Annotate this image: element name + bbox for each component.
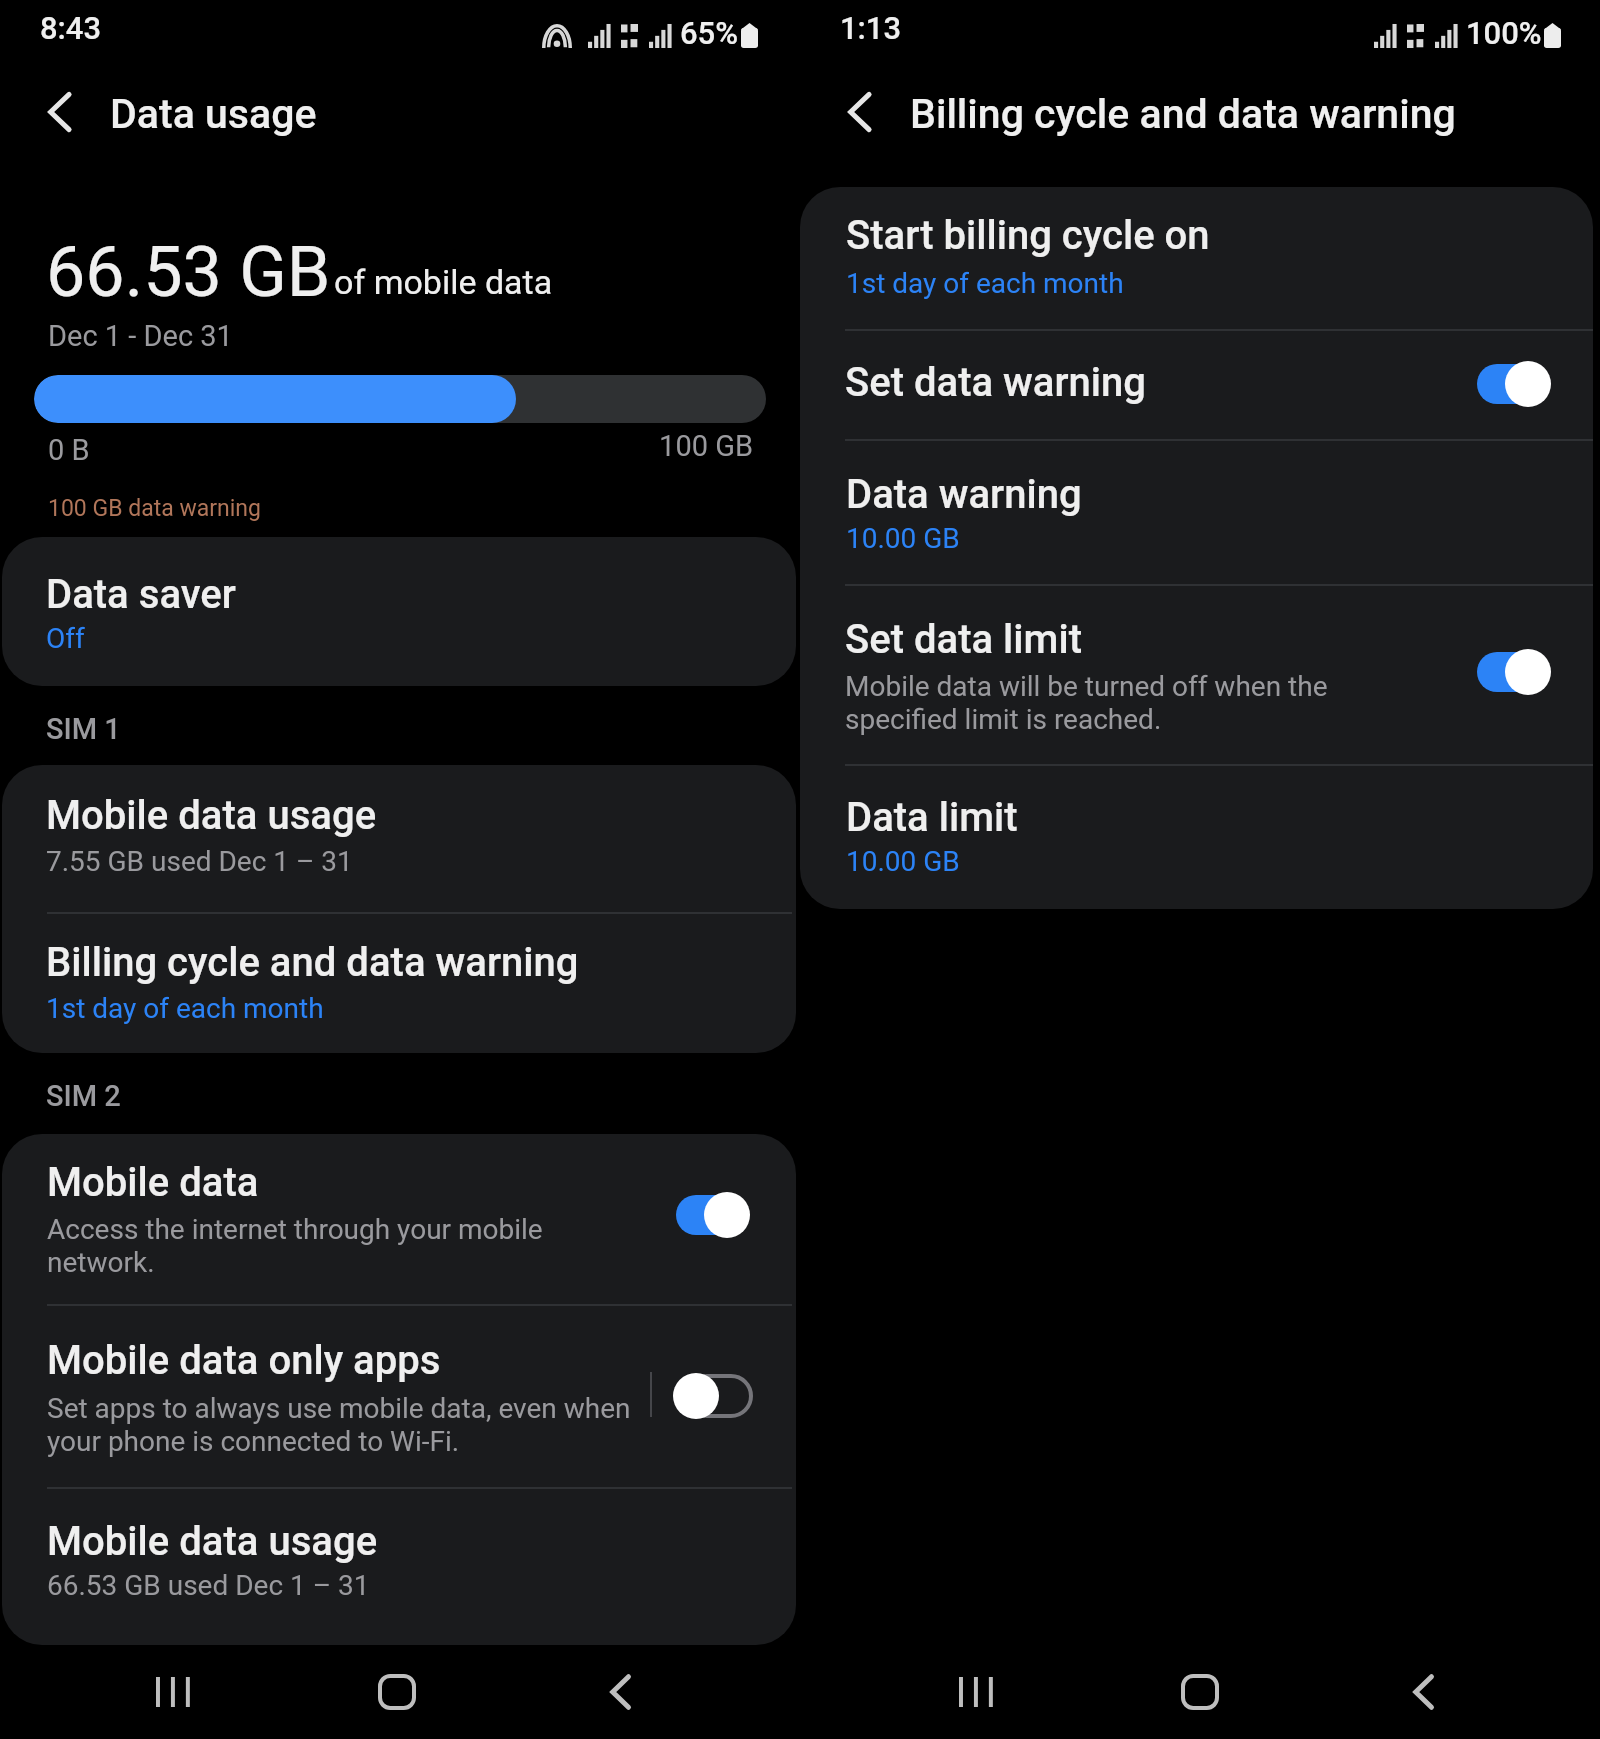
button[interactable]: Back bbox=[28, 80, 92, 144]
staticText: Set apps to always use mobile data, even… bbox=[47, 1392, 631, 1458]
button[interactable]: Home bbox=[357, 1652, 437, 1732]
button[interactable]: Set data warning bbox=[800, 331, 1593, 439]
staticText: 1st day of each month bbox=[846, 267, 1124, 300]
button[interactable]: Data limit, 10.00 GB bbox=[800, 766, 1593, 909]
staticText: Off bbox=[46, 622, 85, 655]
button[interactable]: Back bbox=[580, 1652, 660, 1732]
staticText: 66.53 GB used Dec 1 – 31 bbox=[47, 1569, 370, 1602]
staticText: 65% bbox=[680, 15, 739, 51]
button[interactable]: Back bbox=[1383, 1652, 1463, 1732]
staticText: Mobile data bbox=[47, 1159, 259, 1206]
button[interactable]: Mobile data bbox=[2, 1134, 796, 1304]
staticText: 7.55 GB used Dec 1 – 31 bbox=[46, 845, 353, 878]
staticText: 100% bbox=[1466, 15, 1542, 51]
button[interactable]: Home bbox=[1160, 1652, 1240, 1732]
button[interactable]: Switch on bbox=[676, 1192, 750, 1238]
button[interactable]: Data saver, Off bbox=[2, 537, 796, 686]
staticText: Mobile data only apps bbox=[47, 1337, 441, 1384]
button[interactable]: Billing cycle and data warning, 1st day … bbox=[2, 913, 796, 1053]
staticText: Billing cycle and data warning bbox=[910, 90, 1456, 138]
staticText: 8:43 bbox=[40, 10, 102, 46]
staticText: 66.53 GB bbox=[46, 231, 331, 313]
button[interactable]: Data warning, 10.00 GB bbox=[800, 441, 1593, 584]
staticText: Set data limit bbox=[845, 616, 1082, 663]
staticText: 0 B bbox=[48, 433, 90, 467]
button[interactable]: Recent apps bbox=[134, 1652, 214, 1732]
button[interactable]: Set data limit bbox=[800, 586, 1593, 764]
staticText: 10.00 GB bbox=[846, 845, 960, 878]
staticText: 1st day of each month bbox=[46, 992, 324, 1025]
staticText: Data saver bbox=[46, 571, 236, 618]
staticText: Mobile data usage bbox=[47, 1518, 378, 1565]
staticText: Dec 1 - Dec 31 bbox=[48, 319, 233, 353]
staticText: Data warning bbox=[846, 471, 1082, 518]
button[interactable]: Mobile data usage, 7.55 GB used Dec 1 to… bbox=[2, 765, 796, 912]
button[interactable]: Mobile data only apps bbox=[2, 1306, 796, 1487]
button[interactable]: Switch off bbox=[673, 1373, 747, 1419]
staticText: 100 GB bbox=[500, 429, 753, 463]
staticText: 10.00 GB bbox=[846, 522, 960, 555]
staticText: Billing cycle and data warning bbox=[46, 939, 579, 986]
staticText: 100 GB data warning bbox=[48, 495, 261, 522]
button[interactable]: Back bbox=[828, 80, 892, 144]
button[interactable]: Switch on bbox=[1477, 649, 1551, 695]
staticText: Set data warning bbox=[845, 359, 1146, 406]
staticText: SIM 2 bbox=[46, 1079, 121, 1113]
button[interactable]: Start billing cycle on, 1st day of each … bbox=[800, 187, 1593, 329]
staticText: Access the internet through your mobile … bbox=[47, 1213, 543, 1279]
staticText: Mobile data will be turned off when the … bbox=[845, 670, 1328, 736]
staticText: Mobile data usage bbox=[46, 792, 377, 839]
staticText: SIM 1 bbox=[46, 712, 121, 746]
button[interactable]: Switch on bbox=[1477, 361, 1551, 407]
button[interactable]: Recent apps bbox=[937, 1652, 1017, 1732]
staticText: 1:13 bbox=[840, 10, 902, 46]
staticText: of mobile data bbox=[334, 262, 553, 302]
staticText: Data limit bbox=[846, 794, 1018, 841]
button[interactable]: Mobile data usage, 66.53 GB used Dec 1 t… bbox=[2, 1489, 796, 1645]
staticText: Start billing cycle on bbox=[846, 212, 1210, 259]
staticText: Data usage bbox=[110, 90, 317, 138]
